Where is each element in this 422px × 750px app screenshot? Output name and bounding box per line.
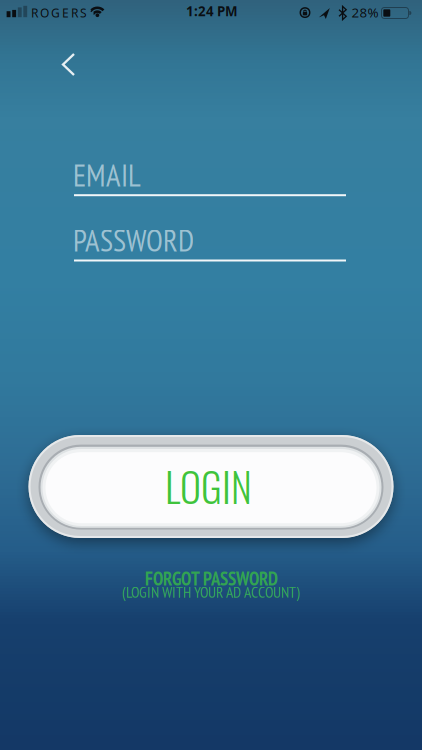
button[interactable]: EMAIL — [73, 150, 347, 206]
staticText: R O G E R S — [31, 5, 87, 21]
staticText: 1:24 PM — [186, 2, 238, 20]
button[interactable]: FORGOT PASSWORD — [90, 559, 332, 611]
staticText: FORGOT PASSWORD — [145, 566, 278, 591]
button[interactable]: PASSWORD — [73, 216, 347, 272]
staticText: (LOGIN WITH YOUR AD ACCOUNT) — [122, 582, 300, 602]
staticText: LOGIN — [165, 456, 252, 516]
staticText: PASSWORD — [73, 220, 194, 260]
staticText: EMAIL — [73, 155, 141, 195]
button[interactable]: Back — [46, 42, 90, 86]
staticText: 28% — [351, 3, 378, 21]
button[interactable]: LOGIN — [21, 427, 401, 545]
